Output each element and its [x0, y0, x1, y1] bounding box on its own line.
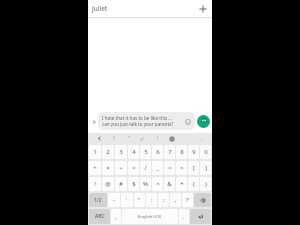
staticText: × — [106, 164, 110, 172]
staticText: " — [138, 196, 141, 204]
staticText: ⋯ — [198, 136, 203, 142]
button[interactable]: ? — [182, 193, 193, 207]
button[interactable]: ] — [200, 161, 211, 175]
button[interactable]: 4 — [128, 145, 139, 159]
staticText: 4 — [132, 148, 136, 156]
button[interactable]: # — [115, 177, 127, 191]
button[interactable]: + — [89, 161, 101, 175]
button[interactable]: ( — [188, 177, 199, 191]
button[interactable]: < — [164, 161, 175, 175]
button[interactable]: $ — [128, 177, 139, 191]
staticText: ! — [157, 135, 159, 142]
staticText: < — [168, 164, 172, 172]
button[interactable]: ! — [89, 177, 101, 191]
staticText: * — [180, 180, 184, 188]
button[interactable]: 9 — [188, 145, 199, 159]
staticText: ) — [205, 180, 207, 188]
staticText: ABC — [95, 213, 105, 220]
button[interactable]: 1/2 — [89, 193, 107, 207]
button[interactable]: Emoji — [167, 134, 176, 143]
button[interactable]: Add — [197, 3, 209, 15]
button[interactable]: Back — [95, 134, 104, 143]
button[interactable]: [ — [188, 161, 199, 175]
button[interactable]: : — [146, 193, 157, 207]
button[interactable]: . — [179, 209, 189, 224]
staticText: 0 — [204, 148, 208, 156]
staticText: 8 — [180, 148, 184, 156]
button[interactable]: Help — [110, 134, 119, 143]
button[interactable]: 3 — [115, 145, 127, 159]
button[interactable]: I hate that it has to be like this ... c… — [98, 112, 195, 130]
button[interactable]: 2 — [102, 145, 114, 159]
button[interactable]: % — [140, 177, 151, 191]
button[interactable]: Enter — [190, 209, 211, 224]
button[interactable]: & — [164, 177, 175, 191]
staticText: 9 — [192, 148, 196, 156]
staticText: 3 — [119, 148, 123, 156]
button[interactable]: ' — [121, 193, 133, 207]
staticText: , — [115, 213, 117, 220]
staticText: / — [144, 164, 147, 172]
button[interactable]: 8 — [176, 145, 187, 159]
staticText: I hate that it has to be like this ... c… — [102, 115, 182, 127]
button[interactable]: * — [176, 177, 187, 191]
staticText: + — [93, 164, 97, 172]
button[interactable]: ; — [158, 193, 169, 207]
button[interactable]: Contact avatar — [197, 115, 210, 128]
button[interactable]: Sticker — [181, 134, 190, 143]
staticText: $ — [132, 180, 136, 188]
staticText: 2 — [106, 148, 110, 156]
staticText: 7 — [168, 148, 172, 156]
staticText: . — [183, 213, 185, 220]
staticText: > — [180, 164, 184, 172]
staticText: ÷ — [119, 164, 123, 172]
staticText: ' — [126, 196, 128, 204]
staticText: ! — [94, 180, 96, 188]
button[interactable]: 0 — [200, 145, 211, 159]
button[interactable]: ) — [200, 177, 211, 191]
button[interactable]: 6 — [152, 145, 163, 159]
button[interactable]: 5 — [140, 145, 151, 159]
staticText: ✐ — [140, 136, 145, 142]
button[interactable]: ^ — [152, 177, 163, 191]
button[interactable]: Settings — [153, 134, 162, 143]
button[interactable]: ABC — [89, 209, 110, 224]
staticText: 1/2 — [94, 197, 102, 204]
staticText: 1 — [93, 148, 97, 156]
button[interactable]: @ — [102, 177, 114, 191]
button[interactable]: 7 — [164, 145, 175, 159]
staticText: & — [167, 180, 172, 188]
staticText: _ — [156, 164, 159, 172]
button[interactable]: Handwriting — [138, 134, 147, 143]
button[interactable]: 1 — [89, 145, 101, 159]
staticText: Juliet — [92, 4, 108, 13]
button[interactable]: English (US) — [122, 209, 178, 224]
button[interactable]: More options — [196, 134, 205, 143]
button[interactable]: Clipboard — [124, 134, 133, 143]
staticText: @ — [105, 180, 111, 188]
button[interactable]: ÷ — [115, 161, 127, 175]
button[interactable]: > — [176, 161, 187, 175]
staticText: ? — [186, 196, 189, 204]
staticText: % — [143, 180, 148, 188]
staticText: = — [132, 164, 136, 172]
button[interactable]: _ — [152, 161, 163, 175]
staticText: ] — [205, 164, 207, 172]
staticText: [ — [193, 164, 195, 172]
button[interactable]: × — [102, 161, 114, 175]
staticText: English (US) — [138, 214, 162, 220]
staticText: “ — [128, 135, 130, 142]
staticText: ? — [113, 135, 116, 142]
staticText: 5 — [144, 148, 148, 156]
button[interactable]: " — [134, 193, 145, 207]
staticText: - — [113, 196, 115, 204]
button[interactable]: , — [111, 209, 121, 224]
staticText: # — [119, 180, 123, 188]
button[interactable]: - — [108, 193, 120, 207]
button[interactable]: Expand — [89, 117, 98, 126]
button[interactable]: , — [170, 193, 181, 207]
button[interactable]: = — [128, 161, 139, 175]
button[interactable]: / — [140, 161, 151, 175]
button[interactable]: Emoji — [184, 118, 191, 125]
button[interactable]: Backspace — [194, 193, 211, 207]
